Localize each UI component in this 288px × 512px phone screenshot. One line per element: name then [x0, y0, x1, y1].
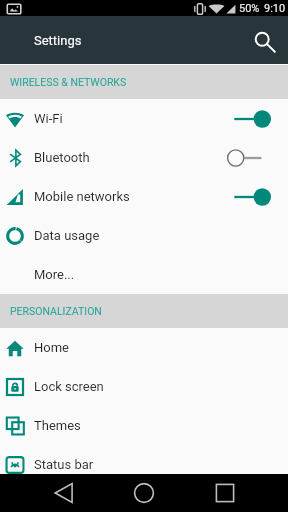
staticText: Bluetooth [34, 150, 90, 165]
staticText: WIRELESS & NETWORKS [10, 76, 127, 88]
staticText: 9:10 [264, 2, 286, 15]
button[interactable]: Search [244, 16, 288, 64]
staticText: Data usage [34, 228, 100, 243]
staticText: Home [34, 340, 69, 355]
button[interactable]: Home [116, 474, 172, 512]
button[interactable]: Back [36, 474, 92, 512]
button[interactable]: Off [227, 138, 271, 177]
staticText: Mobile networks [34, 189, 130, 204]
button[interactable]: Themes [0, 406, 288, 445]
button[interactable]: Recents [197, 474, 253, 512]
staticText: Lock screen [34, 379, 104, 394]
button[interactable]: On [227, 99, 271, 138]
staticText: Themes [34, 418, 81, 433]
button[interactable]: On [227, 177, 271, 216]
button[interactable]: Lock screen [0, 367, 288, 406]
staticText: Wi-Fi [34, 111, 63, 126]
staticText: PERSONALIZATION [10, 305, 102, 317]
button[interactable]: Data usage [0, 216, 288, 255]
staticText: Status bar [34, 457, 94, 472]
button[interactable]: Wi-Fi [0, 99, 288, 138]
button[interactable]: Bluetooth [0, 138, 288, 177]
button[interactable]: Status bar [0, 445, 288, 484]
button[interactable]: Home [0, 328, 288, 367]
staticText: 50% [239, 2, 260, 15]
button[interactable]: Mobile networks [0, 177, 288, 216]
staticText: Settings [34, 33, 82, 48]
staticText: More... [34, 267, 75, 282]
button[interactable]: More... [0, 255, 288, 294]
